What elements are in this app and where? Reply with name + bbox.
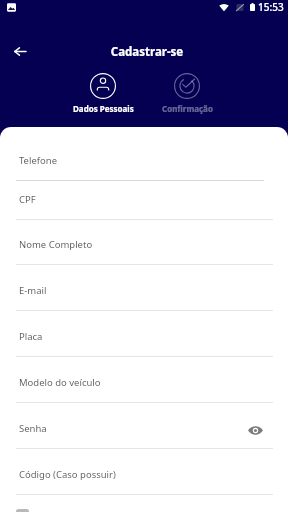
staticText: Senha (19, 422, 47, 435)
staticText: Código (Caso possuir) (19, 468, 116, 481)
staticText: Nome Completo (19, 238, 93, 251)
button[interactable]: Dados Pessoais (65, 70, 141, 114)
button[interactable]: Voltar (6, 37, 34, 65)
button[interactable]: Placa (0, 318, 288, 356)
staticText: E-mail (19, 284, 47, 297)
staticText: CPF (19, 193, 36, 206)
button[interactable]: Telefone (0, 142, 288, 180)
button[interactable]: Aceitar termos (16, 509, 29, 512)
button[interactable]: E-mail (0, 272, 288, 310)
staticText: Placa (19, 330, 43, 343)
staticText: Dados Pessoais (73, 103, 134, 114)
staticText: Modelo do veículo (19, 376, 101, 389)
staticText: Confirmação (162, 103, 213, 114)
button[interactable]: Nome Completo (0, 226, 288, 264)
button[interactable]: Código (Caso possuir) (0, 456, 288, 494)
button[interactable]: Senha (0, 410, 288, 448)
button[interactable]: Modelo do veículo (0, 364, 288, 402)
staticText: 15:53 (258, 0, 284, 14)
staticText: Cadastrar-se (3, 44, 288, 60)
other: Mostrar senha (248, 426, 263, 435)
staticText: Telefone (19, 154, 58, 167)
button[interactable]: CPF (0, 181, 288, 219)
button[interactable]: Confirmação (149, 70, 225, 114)
